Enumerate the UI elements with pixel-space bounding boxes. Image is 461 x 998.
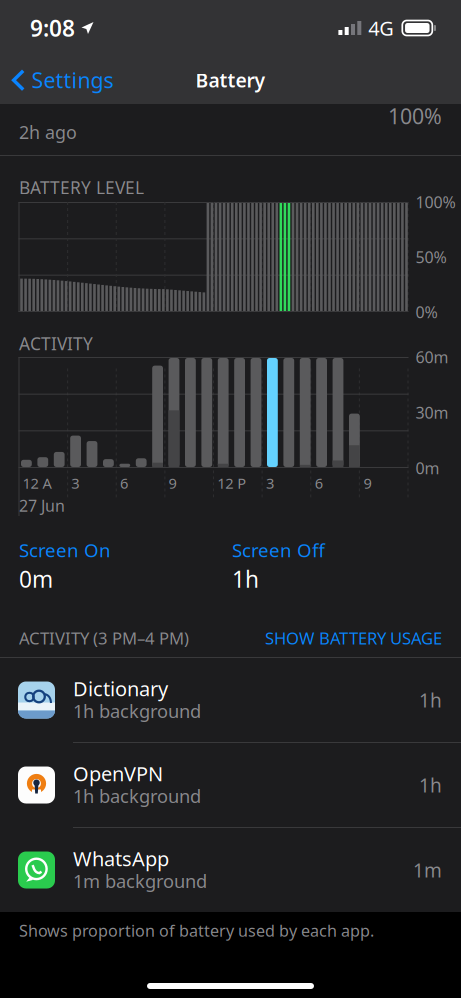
staticText: 12 A (22, 473, 51, 493)
staticText: 9:08 (30, 13, 75, 43)
staticText: 1m (413, 857, 442, 883)
staticText: Dictionary (73, 675, 168, 702)
staticText: Settings (31, 65, 113, 95)
staticText: ACTIVITY (19, 332, 93, 355)
staticText: 0m (415, 457, 439, 479)
staticText: 4G (368, 14, 394, 42)
staticText: 30m (415, 402, 448, 423)
button[interactable]: SHOW BATTERY USAGE (265, 630, 442, 646)
button[interactable]: WhatsApp (0, 828, 461, 912)
staticText: BATTERY LEVEL (19, 176, 144, 199)
staticText: 1h background (73, 784, 201, 808)
staticText: 27 Jun (19, 495, 65, 516)
staticText: 100% (415, 191, 455, 213)
staticText: 1h (419, 687, 442, 713)
button[interactable]: Settings (0, 56, 113, 104)
staticText: 0% (415, 301, 437, 323)
staticText: 100% (388, 101, 442, 131)
staticText: 1m background (73, 869, 207, 893)
staticText: Screen On (19, 537, 111, 563)
staticText: Screen Off (232, 537, 325, 563)
staticText: 12 P (217, 473, 246, 493)
staticText: 50% (415, 246, 446, 268)
staticText: 1h background (73, 699, 201, 723)
button[interactable]: OpenVPN (0, 743, 461, 827)
staticText: 0m (19, 564, 53, 594)
staticText: 1h (419, 772, 442, 798)
button[interactable]: Dictionary (0, 658, 461, 742)
staticText: OpenVPN (73, 760, 163, 787)
staticText: 1h (232, 564, 259, 594)
staticText: 2h ago (19, 120, 77, 144)
staticText: WhatsApp (73, 845, 169, 872)
staticText: 9 (363, 473, 371, 493)
staticText: Battery (195, 67, 265, 93)
staticText: 9 (169, 473, 177, 493)
staticText: ACTIVITY (3 PM–4 PM) (19, 627, 189, 649)
staticText: 6 (120, 473, 128, 493)
staticText: 60m (415, 346, 448, 368)
staticText: 3 (71, 473, 79, 493)
staticText: SHOW BATTERY USAGE (265, 627, 442, 649)
staticText: 3 (266, 473, 274, 493)
staticText: 6 (315, 473, 323, 493)
staticText: Shows proportion of battery used by each… (19, 919, 374, 941)
